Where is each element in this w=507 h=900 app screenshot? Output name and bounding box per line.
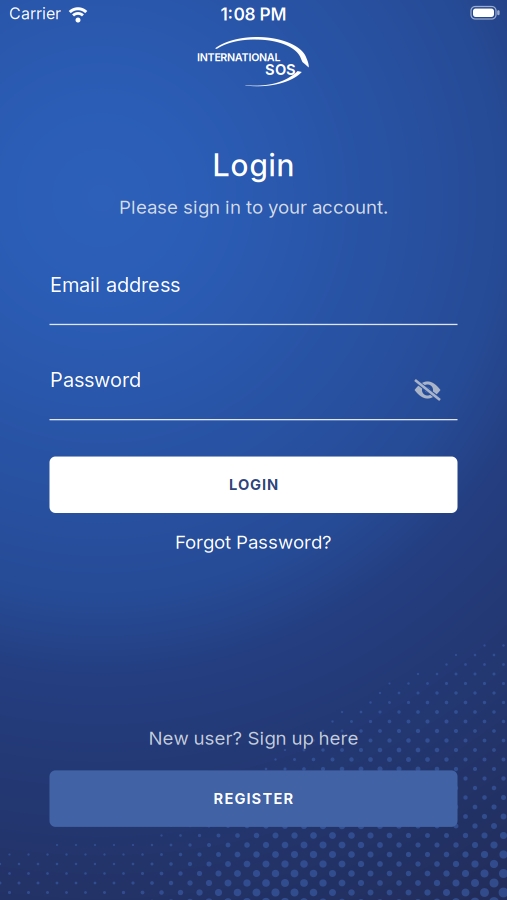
staticText: Forgot Password?	[175, 531, 332, 553]
staticText: SOS	[265, 61, 296, 78]
staticText: Email address	[50, 273, 180, 297]
staticText: Please sign in to your account.	[119, 196, 388, 218]
button[interactable]: Show password	[414, 379, 441, 401]
staticText: Login	[212, 147, 294, 183]
button[interactable]: New user? Sign up here	[148, 727, 358, 749]
staticText: 1:08 PM	[220, 4, 286, 24]
staticText: LOGIN	[229, 476, 278, 493]
staticText: Carrier	[9, 4, 61, 23]
button[interactable]: LOGIN	[49, 456, 457, 513]
staticText: Password	[50, 368, 141, 392]
button[interactable]: Forgot Password?	[175, 531, 332, 553]
staticText: REGISTER	[213, 790, 293, 807]
button[interactable]: REGISTER	[49, 770, 457, 827]
staticText: New user? Sign up here	[148, 727, 358, 749]
staticText: INTERNATIONAL	[197, 51, 281, 64]
